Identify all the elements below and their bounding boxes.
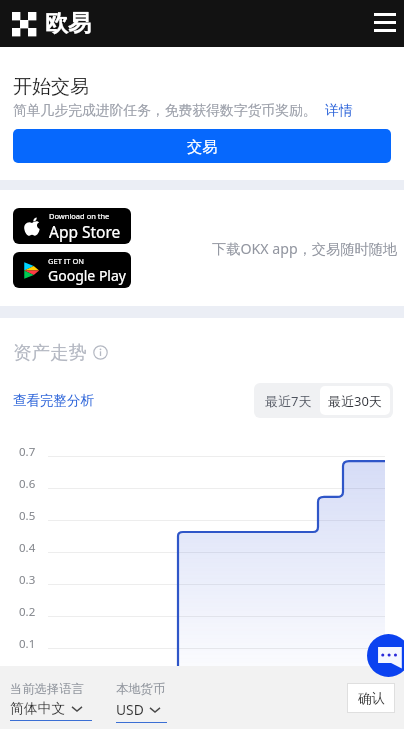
staticText: 开始交易 bbox=[13, 75, 89, 99]
button[interactable]: Get it on Google Play bbox=[13, 252, 131, 288]
staticText: Download on the bbox=[49, 211, 110, 221]
staticText: 0.1 bbox=[19, 636, 36, 652]
staticText: 本地货币 bbox=[116, 681, 166, 696]
staticText: 最近30天 bbox=[328, 392, 382, 410]
button[interactable]: 最近30天 bbox=[320, 386, 390, 415]
staticText: 简单几步完成进阶任务，免费获得数字货币奖励。 bbox=[13, 102, 317, 119]
staticText: 简体中文 bbox=[10, 700, 66, 717]
button[interactable]: 当前选择语言 bbox=[10, 681, 92, 721]
button[interactable]: 确认 bbox=[347, 683, 395, 713]
staticText: 欧易 bbox=[45, 9, 91, 38]
staticText: App Store bbox=[49, 221, 121, 242]
button[interactable]: Download on the App Store bbox=[13, 208, 131, 244]
staticText: 0.4 bbox=[19, 540, 36, 556]
button[interactable]: 最近7天 bbox=[257, 386, 320, 415]
staticText: 资产走势 bbox=[13, 341, 87, 364]
staticText: 最近7天 bbox=[265, 392, 312, 410]
staticText: 下载OKX app，交易随时随地 bbox=[212, 239, 397, 258]
staticText: 0.5 bbox=[19, 508, 36, 524]
staticText: 交易 bbox=[187, 137, 218, 156]
button[interactable]: Menu bbox=[367, 4, 403, 40]
staticText: 0.7 bbox=[19, 444, 36, 460]
button[interactable]: 交易 bbox=[13, 129, 391, 163]
staticText: 0.3 bbox=[19, 572, 36, 588]
button[interactable]: 欧易 bbox=[12, 9, 91, 38]
button[interactable]: 本地货币 bbox=[116, 681, 167, 723]
staticText: Google Play bbox=[48, 266, 126, 285]
button[interactable]: 查看完整分析 bbox=[13, 392, 94, 409]
button[interactable]: 详情 bbox=[325, 102, 353, 119]
button[interactable]: Chat support bbox=[367, 634, 404, 677]
staticText: 0.2 bbox=[19, 604, 36, 620]
staticText: GET IT ON bbox=[48, 256, 84, 266]
staticText: USD bbox=[116, 700, 144, 719]
staticText: 确认 bbox=[358, 690, 385, 707]
staticText: 0.6 bbox=[19, 476, 36, 492]
staticText: 当前选择语言 bbox=[10, 681, 84, 696]
